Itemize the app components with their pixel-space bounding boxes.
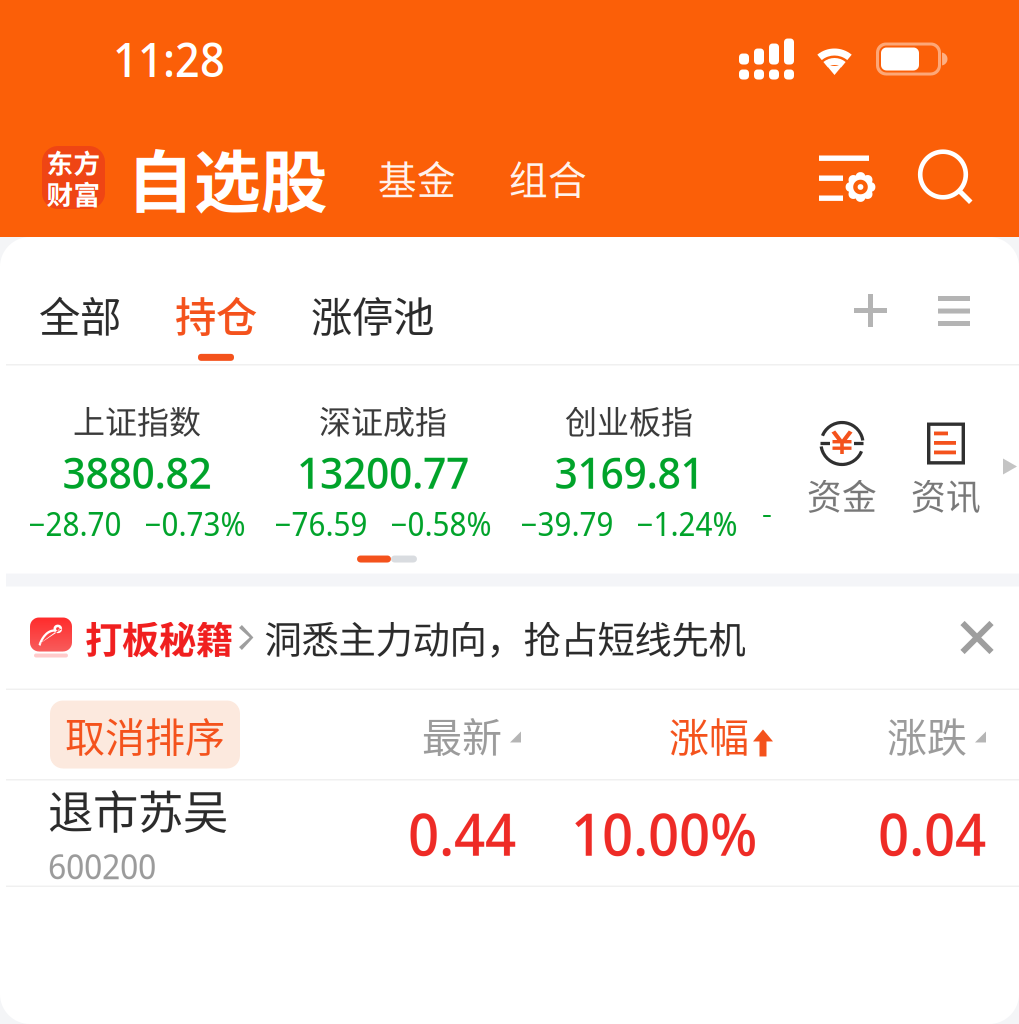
staticText: 深证成指 <box>319 396 447 443</box>
staticText: 10.00% <box>571 793 757 873</box>
button[interactable]: 涨跌 <box>887 705 986 763</box>
staticText: −76.59 <box>274 502 367 545</box>
button[interactable]: 最新 <box>422 705 524 763</box>
staticText: 13200.77 <box>297 442 469 502</box>
staticText: 600200 <box>48 842 156 889</box>
button[interactable]: 持仓 <box>175 284 257 361</box>
staticText: 退市苏吴 <box>48 777 228 842</box>
button[interactable]: 东方财富 <box>42 146 105 209</box>
staticText: 涨幅 <box>669 705 749 763</box>
staticText: 涨停池 <box>311 284 434 344</box>
staticText: 持仓 <box>175 284 257 344</box>
staticText: 0.44 <box>408 793 516 873</box>
staticText: 0.04 <box>878 793 986 873</box>
staticText: 基金 <box>378 149 456 205</box>
staticText: 财富 <box>46 178 100 208</box>
staticText: 创业板指 <box>565 396 693 443</box>
button[interactable]: 资讯 <box>894 396 998 526</box>
staticText: 打板秘籍 <box>85 610 233 665</box>
staticText: 3169.81 <box>554 442 703 502</box>
staticText: 3880.82 <box>62 442 211 502</box>
staticText: 东方 <box>46 147 100 177</box>
staticText: 11:28 <box>113 27 225 91</box>
staticText: 最新 <box>422 705 502 763</box>
button[interactable]: 基金 <box>378 149 456 205</box>
staticText: 涨跌 <box>887 705 967 763</box>
button[interactable]: 打板秘籍 <box>6 586 1019 688</box>
staticText: 资金 <box>807 469 877 520</box>
staticText: 全部 <box>39 284 121 344</box>
button[interactable]: 上证指数 <box>14 396 260 526</box>
staticText: - <box>762 491 772 534</box>
button[interactable]: 深证成指 <box>260 396 506 526</box>
button[interactable]: 搜索 <box>918 149 974 205</box>
button[interactable]: 更多 <box>924 284 984 326</box>
staticText: 组合 <box>509 149 587 205</box>
staticText: −39.79 <box>520 502 613 545</box>
button[interactable]: 涨幅 <box>669 705 769 763</box>
staticText: 自选股 <box>127 129 328 226</box>
button[interactable]: 创业板指 <box>506 396 752 526</box>
button[interactable]: 取消排序 <box>50 700 240 768</box>
button[interactable]: 资金 <box>790 396 894 526</box>
button[interactable]: 添加自选 <box>840 284 901 327</box>
button[interactable]: 涨停池 <box>311 284 434 361</box>
button[interactable]: 退市苏吴 <box>6 780 1019 885</box>
staticText: 洞悉主力动向，抢占短线先机 <box>264 610 745 665</box>
button[interactable]: 设置 <box>819 153 874 201</box>
staticText: −0.58% <box>390 502 491 545</box>
staticText: 上证指数 <box>73 396 201 443</box>
staticText: 资讯 <box>911 469 981 520</box>
button[interactable]: 全部 <box>39 284 121 361</box>
staticText: −28.70 <box>28 502 121 545</box>
staticText: −1.24% <box>636 502 737 545</box>
button[interactable]: 组合 <box>509 149 587 205</box>
staticText: 取消排序 <box>65 705 225 763</box>
staticText: −0.73% <box>144 502 245 545</box>
